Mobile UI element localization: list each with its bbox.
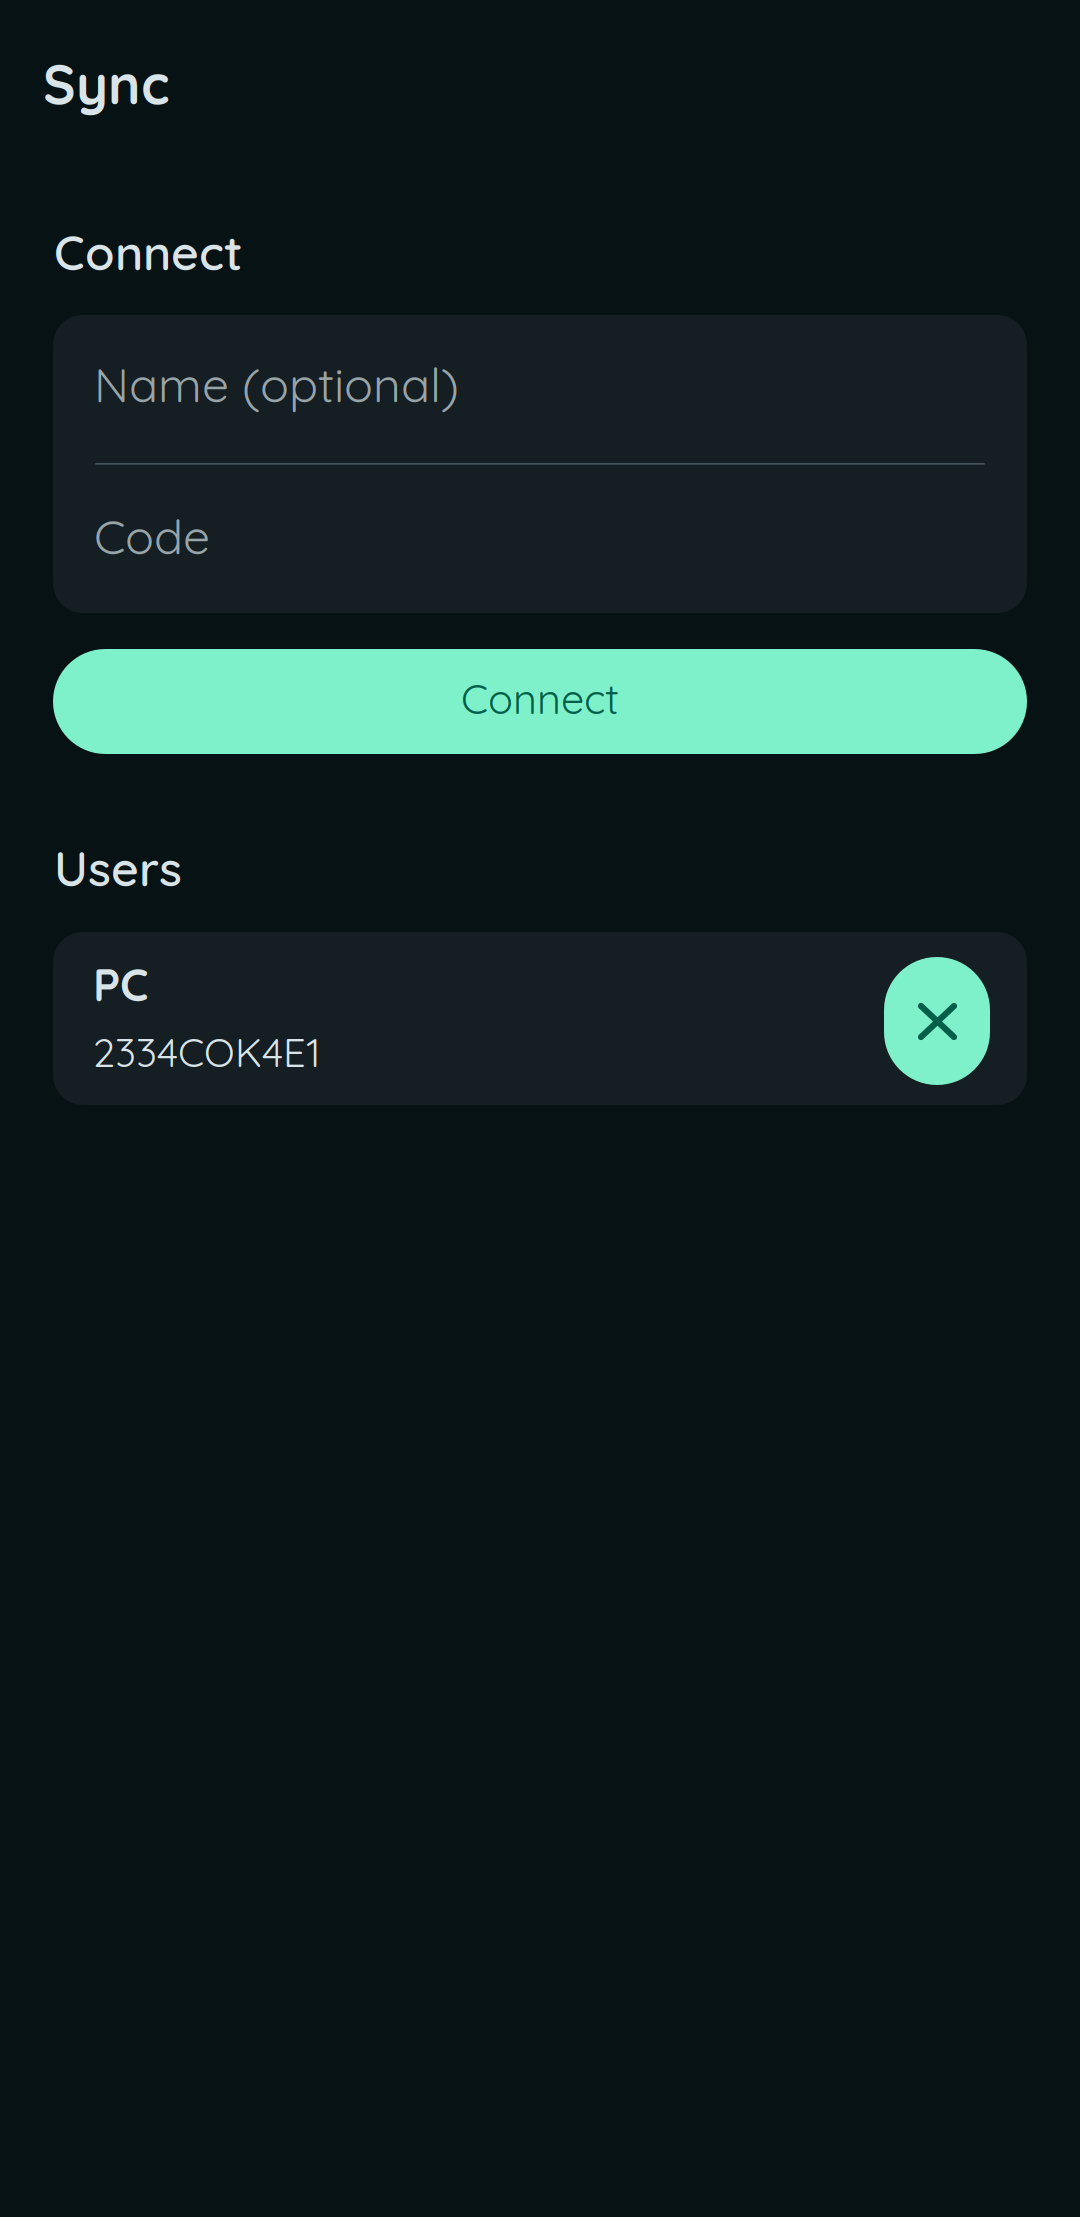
button[interactable]: Code (53, 464, 1027, 613)
staticText: 2334COK4E1 (93, 1027, 321, 1077)
button[interactable]: Name (optional) (53, 315, 1027, 464)
staticText: Sync (43, 50, 169, 118)
button[interactable]: Remove user (884, 957, 990, 1085)
staticText: PC (93, 956, 148, 1012)
button[interactable]: Connect (53, 649, 1027, 754)
staticText: Connect (461, 673, 619, 724)
staticText: Code (94, 506, 210, 566)
staticText: Name (optional) (94, 354, 459, 414)
staticText: Users (54, 838, 182, 898)
staticText: Connect (54, 222, 243, 282)
